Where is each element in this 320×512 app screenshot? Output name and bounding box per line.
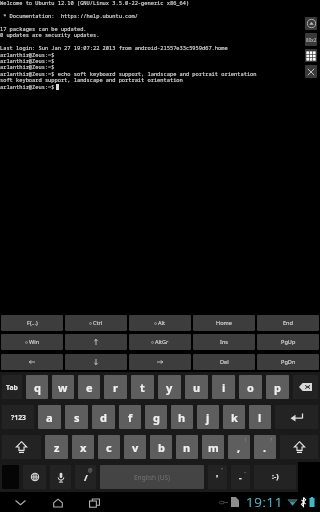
button[interactable]: Left (1, 354, 63, 370)
staticText: Ins (220, 338, 229, 346)
button[interactable]: ' (208, 465, 227, 489)
button[interactable]: Terminal size (305, 33, 317, 46)
button[interactable]: Scroll up (305, 17, 317, 30)
button[interactable]: . (254, 435, 276, 459)
button[interactable]: Up (65, 334, 127, 350)
staticText: j (206, 410, 210, 425)
staticText: y (166, 380, 173, 395)
staticText: Win (29, 338, 40, 346)
button[interactable]: k (223, 405, 245, 429)
staticText: 80x2 (306, 37, 317, 43)
button[interactable]: Enter (275, 405, 318, 429)
button[interactable]: z (45, 435, 68, 459)
staticText: " (221, 467, 224, 474)
button[interactable]: l (249, 405, 271, 429)
button[interactable]: r (104, 375, 127, 399)
staticText: g (153, 410, 160, 425)
staticText: w (58, 380, 68, 395)
button[interactable]: b (150, 435, 172, 459)
button[interactable]: PgDn (257, 354, 319, 370)
button[interactable]: y (158, 375, 181, 399)
button[interactable]: Alt (129, 315, 191, 331)
staticText: AltGr (155, 338, 169, 346)
staticText: v (132, 440, 139, 455)
staticText: z (54, 440, 60, 455)
button[interactable]: Ctrl (65, 315, 127, 331)
button[interactable]: o (239, 375, 262, 399)
button[interactable]: h (171, 405, 193, 429)
button[interactable]: g (145, 405, 167, 429)
button[interactable]: Shift (2, 435, 41, 459)
button[interactable]: Toggle keyboard (305, 49, 317, 62)
staticText: _ (244, 467, 247, 474)
button[interactable]: c (98, 435, 120, 459)
button[interactable]: j (197, 405, 219, 429)
button[interactable]: Down (65, 354, 127, 370)
button[interactable]: i (212, 375, 235, 399)
button[interactable]: Home (49, 494, 66, 511)
button[interactable]: q (26, 375, 48, 399)
staticText: ? (270, 437, 273, 444)
button[interactable]: English (US) (100, 465, 204, 489)
button[interactable]: t (131, 375, 154, 399)
staticText: 17 packages can be updated. (0, 25, 87, 32)
button[interactable]: Backspace (293, 375, 318, 399)
staticText: arlanthir@Zeus:~$ (0, 83, 58, 90)
staticText: a (46, 410, 53, 425)
staticText: Home (216, 319, 232, 327)
button[interactable]: Hide keyboard (12, 494, 29, 511)
button[interactable]: v (124, 435, 146, 459)
staticText: s (74, 410, 80, 425)
staticText: arlanthir@Zeus:~$ (0, 57, 55, 64)
button[interactable]: PgUp (257, 334, 319, 350)
staticText: . (263, 440, 267, 455)
button[interactable]: Win (1, 334, 63, 350)
button[interactable]: AltGr (129, 334, 191, 350)
staticText: English (US) (134, 473, 171, 482)
button[interactable]: p (266, 375, 289, 399)
button[interactable]: Close (305, 65, 317, 78)
button[interactable]: a (38, 405, 61, 429)
staticText: arlanthir@Zeus:~$ (0, 63, 55, 70)
staticText: o (247, 380, 254, 395)
button[interactable]: F(...) (1, 315, 63, 331)
staticText: 19:11 (246, 493, 284, 511)
staticText: t (140, 380, 145, 395)
staticText: ?123 (11, 413, 26, 422)
button[interactable]: s (65, 405, 88, 429)
staticText: x (80, 440, 87, 455)
button[interactable]: u (185, 375, 208, 399)
staticText: c (106, 440, 112, 455)
button[interactable]: Right (129, 354, 191, 370)
button[interactable]: End (257, 315, 319, 331)
button[interactable]: / (75, 465, 96, 489)
button[interactable]: Home (193, 315, 255, 331)
button[interactable]: Voice input (50, 465, 71, 489)
button[interactable]: - (231, 465, 250, 489)
button[interactable]: ?123 (2, 405, 34, 429)
button[interactable]: e (78, 375, 100, 399)
staticText: Last login: Sun Jan 27 19:07:22 2013 fro… (0, 44, 228, 51)
staticText: F(...) (27, 319, 38, 327)
button[interactable]: Switch keyboard (23, 465, 46, 489)
button[interactable]: Recent apps (86, 494, 103, 511)
button[interactable]: Ins (193, 334, 255, 350)
button[interactable]: , (228, 435, 250, 459)
staticText: arlanthir@Zeus:~$ echo soft keyboard sup… (0, 70, 257, 77)
staticText: f (128, 410, 133, 425)
button[interactable]: x (72, 435, 94, 459)
button[interactable]: m (202, 435, 224, 459)
staticText: Ctrl (93, 319, 103, 327)
button[interactable]: :-) (254, 465, 296, 489)
button[interactable]: Del (193, 354, 255, 370)
button[interactable]: d (92, 405, 115, 429)
staticText: / (84, 471, 88, 483)
staticText: d (100, 410, 107, 425)
button[interactable]: Tab (2, 375, 22, 399)
button[interactable]: n (176, 435, 198, 459)
button[interactable]: f (119, 405, 141, 429)
button[interactable]: Shift (280, 435, 318, 459)
button[interactable]: w (52, 375, 74, 399)
staticText: b (158, 440, 165, 455)
